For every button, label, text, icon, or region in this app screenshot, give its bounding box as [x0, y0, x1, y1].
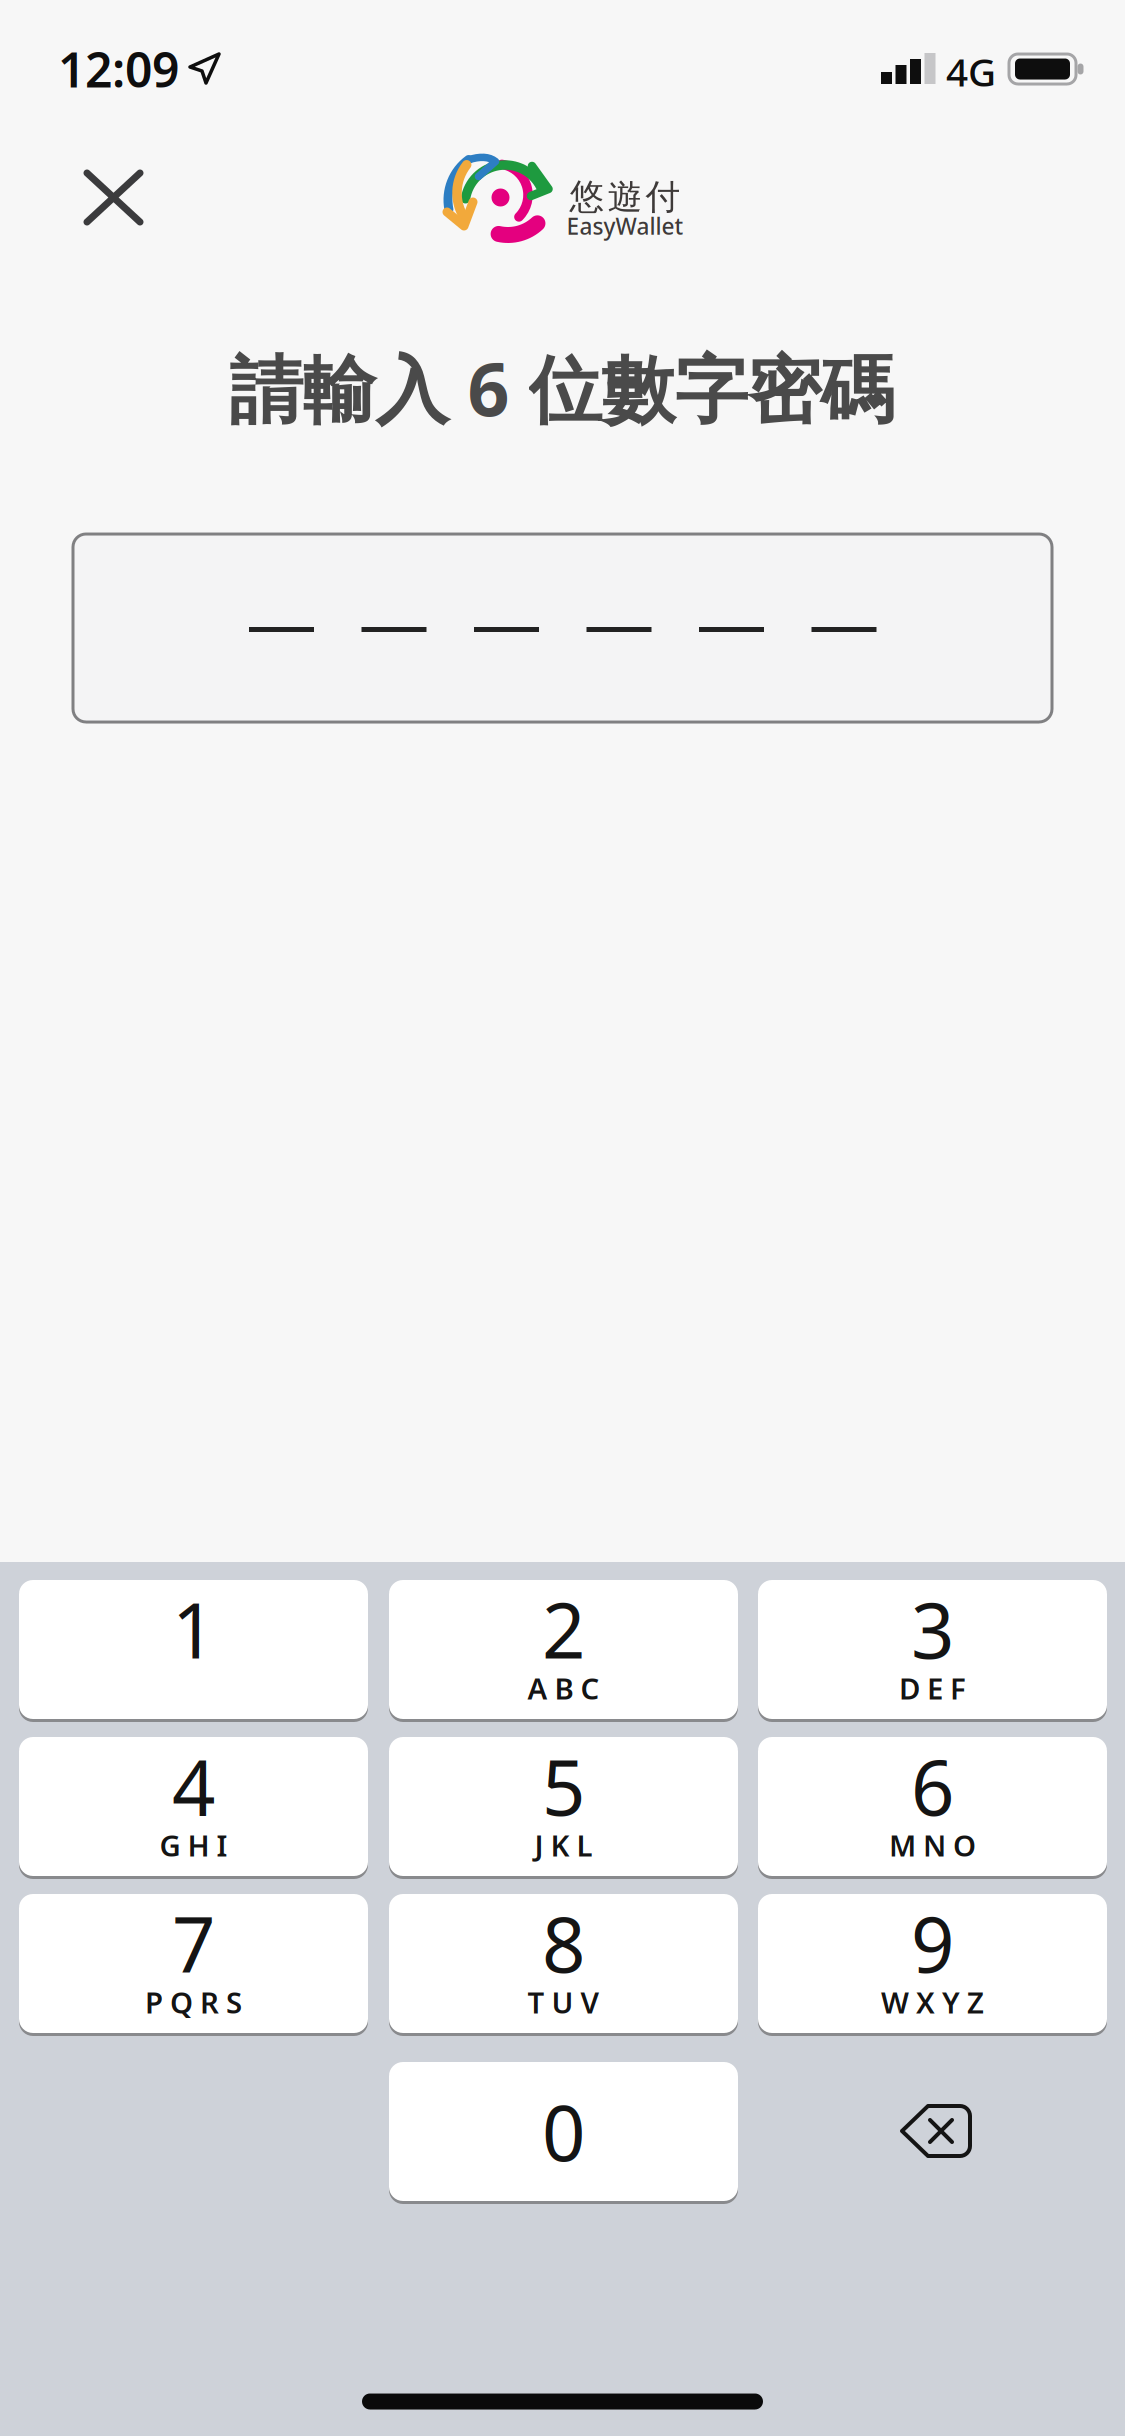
button[interactable]: 2 — [389, 1580, 738, 1719]
staticText: 3 — [911, 1578, 954, 1679]
staticText: MNO — [889, 1825, 976, 1864]
staticText: TUV — [527, 1982, 599, 2021]
button[interactable]: 4 — [19, 1737, 368, 1876]
button[interactable]: 3 — [758, 1580, 1107, 1719]
staticText: 2 — [542, 1578, 585, 1679]
button[interactable]: 8 — [389, 1894, 738, 2033]
staticText: 悠遊付 — [569, 176, 680, 218]
button[interactable]: 6 — [758, 1737, 1107, 1876]
button[interactable]: Delete — [891, 2096, 981, 2166]
staticText: 1 — [172, 1578, 215, 1679]
button[interactable]: 5 — [389, 1737, 738, 1876]
staticText: 12:09 — [58, 37, 179, 101]
staticText: EasyWallet — [566, 211, 683, 241]
button[interactable]: 7 — [19, 1894, 368, 2033]
staticText: ABC — [527, 1668, 599, 1707]
staticText: 7 — [172, 1892, 215, 1993]
staticText: WXYZ — [881, 1982, 984, 2021]
staticText: 5 — [542, 1735, 585, 1836]
staticText: 8 — [542, 1892, 585, 1993]
button[interactable]: 9 — [758, 1894, 1107, 2033]
button[interactable]: Close — [69, 153, 157, 241]
button[interactable]: Passcode entry field — [73, 534, 1052, 722]
staticText: PQRS — [145, 1982, 242, 2021]
button[interactable]: 1 — [19, 1580, 368, 1719]
staticText: 6 — [911, 1735, 954, 1836]
staticText: 0 — [542, 2081, 585, 2182]
staticText: 9 — [911, 1892, 954, 1993]
staticText: 4G — [946, 46, 996, 97]
staticText: 請輸入 6 位數字密碼 — [229, 339, 893, 437]
staticText: GHI — [159, 1825, 227, 1864]
staticText: 4 — [172, 1735, 215, 1836]
staticText: DEF — [899, 1668, 966, 1707]
staticText: JKL — [534, 1825, 592, 1864]
button[interactable]: 0 — [389, 2062, 738, 2201]
